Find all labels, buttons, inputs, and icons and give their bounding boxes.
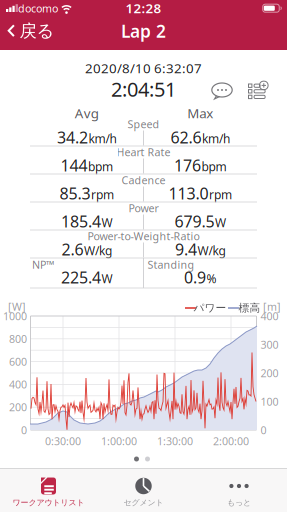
- staticText: 2:04:51: [111, 76, 176, 102]
- button[interactable]: リストに追加: [247, 82, 268, 99]
- staticText: %: [206, 271, 216, 286]
- staticText: 2.6: [61, 239, 83, 260]
- staticText: 200: [9, 400, 27, 414]
- staticText: 113.0: [168, 183, 208, 204]
- staticText: 2020/8/10 6:32:07: [85, 59, 202, 77]
- staticText: 62.6: [170, 127, 201, 148]
- staticText: 標高: [238, 301, 260, 314]
- button[interactable]: コメント: [211, 82, 233, 99]
- staticText: 0: [260, 423, 266, 437]
- staticText: [m]: [263, 299, 281, 314]
- staticText: Lap 2: [121, 19, 166, 42]
- staticText: bpm: [88, 159, 113, 174]
- staticText: Standing: [147, 257, 194, 272]
- staticText: rpm: [209, 187, 232, 202]
- staticText: 100: [260, 394, 278, 409]
- staticText: 400: [260, 309, 278, 323]
- staticText: Cadence: [121, 173, 165, 187]
- staticText: 85.3: [59, 183, 90, 204]
- staticText: 1:30:00: [157, 434, 193, 448]
- button[interactable]: ワークアウトリスト: [0, 468, 95, 512]
- staticText: Heart Rate: [116, 145, 170, 159]
- staticText: rpm: [91, 187, 114, 202]
- staticText: もっと: [227, 498, 251, 507]
- staticText: Max: [187, 104, 213, 122]
- staticText: 144: [60, 155, 87, 176]
- staticText: Avg: [75, 104, 99, 122]
- staticText: docomo: [18, 1, 58, 15]
- staticText: 12:28: [125, 0, 161, 17]
- staticText: 0:30:00: [45, 434, 81, 448]
- staticText: km/h: [202, 131, 230, 146]
- staticText: Power-to-Weight-Ratio: [87, 229, 199, 243]
- staticText: 176: [174, 155, 201, 176]
- staticText: 1000: [3, 309, 27, 323]
- staticText: ワークアウトリスト: [12, 498, 84, 507]
- staticText: 9.4: [175, 239, 197, 260]
- staticText: W: [215, 215, 226, 230]
- staticText: 0: [21, 423, 27, 437]
- button[interactable]: セグメント: [96, 468, 191, 512]
- staticText: [W]: [8, 299, 26, 314]
- staticText: パワー: [193, 301, 226, 314]
- staticText: W: [101, 215, 112, 230]
- staticText: 400: [9, 377, 27, 391]
- staticText: 185.4: [61, 211, 101, 232]
- staticText: bpm: [201, 159, 226, 174]
- staticText: 戻る: [19, 20, 54, 42]
- staticText: W/kg: [84, 243, 112, 258]
- staticText: km/h: [88, 131, 116, 146]
- staticText: Power: [128, 201, 158, 215]
- staticText: NP™: [32, 257, 54, 272]
- staticText: 200: [260, 366, 278, 380]
- staticText: 600: [9, 354, 27, 369]
- staticText: 225.4: [61, 267, 101, 288]
- button[interactable]: 戻る: [3, 16, 59, 46]
- button[interactable]: もっと: [191, 468, 286, 512]
- staticText: 34.2: [57, 127, 88, 148]
- staticText: 679.5: [174, 211, 214, 232]
- staticText: 1:00:00: [101, 434, 137, 448]
- staticText: 2:00:00: [213, 434, 249, 448]
- staticText: 800: [9, 332, 27, 346]
- staticText: 300: [260, 337, 278, 352]
- staticText: W/kg: [197, 243, 225, 258]
- staticText: セグメント: [123, 498, 163, 507]
- staticText: W: [101, 271, 112, 286]
- staticText: Speed: [127, 117, 159, 131]
- staticText: 0.9: [184, 267, 206, 288]
